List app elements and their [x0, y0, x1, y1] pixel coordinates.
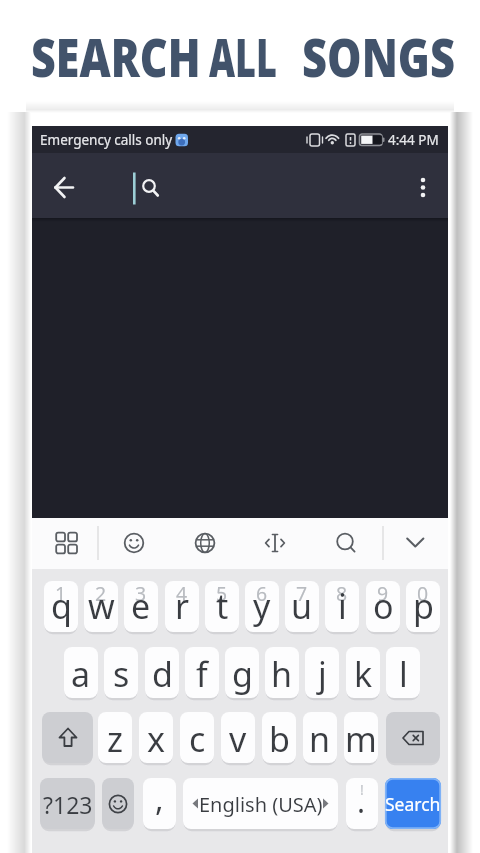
staticText: f	[196, 651, 208, 697]
button[interactable]	[102, 778, 134, 829]
staticText: 8	[336, 580, 348, 607]
button[interactable]	[183, 520, 228, 567]
button[interactable]: 0	[406, 581, 440, 632]
button[interactable]: 1	[44, 581, 78, 632]
button[interactable]	[386, 712, 440, 763]
button[interactable]: f	[185, 647, 219, 698]
staticText: 5	[216, 580, 228, 607]
staticText: Search	[385, 792, 441, 816]
staticText: 4	[176, 580, 188, 607]
button[interactable]: n	[303, 712, 337, 763]
button[interactable]	[393, 520, 438, 567]
staticText: Emergency calls only	[40, 131, 173, 149]
staticText: n	[309, 716, 331, 762]
staticText: w	[88, 583, 115, 629]
staticText: 9	[377, 580, 389, 607]
staticText: 7	[296, 580, 308, 607]
button[interactable]	[253, 520, 298, 567]
button[interactable]: 8	[325, 581, 359, 632]
button[interactable]	[44, 520, 89, 567]
staticText: SONGS	[302, 21, 456, 93]
staticText: 3	[135, 580, 147, 607]
button[interactable]: Search	[385, 778, 441, 829]
button[interactable]: 3	[124, 581, 158, 632]
button[interactable]: s	[104, 647, 138, 698]
staticText: 2	[95, 580, 107, 607]
staticText: 0	[417, 580, 429, 607]
staticText: o	[373, 583, 394, 629]
staticText: v	[229, 716, 247, 762]
button[interactable]: x	[139, 712, 173, 763]
button[interactable]: English (USA)	[183, 778, 338, 829]
button[interactable]: m	[344, 712, 378, 763]
staticText: g	[232, 651, 253, 697]
staticText: 1	[55, 580, 67, 607]
staticText: q	[51, 583, 72, 629]
staticText: k	[354, 651, 373, 697]
staticText: c	[189, 716, 206, 762]
button[interactable]: l	[386, 647, 420, 698]
button[interactable]: 9	[366, 581, 400, 632]
button[interactable]	[40, 163, 86, 209]
button[interactable]: j	[305, 647, 339, 698]
button[interactable]	[323, 520, 368, 567]
staticText: t	[216, 583, 229, 629]
button[interactable]: z	[98, 712, 132, 763]
button[interactable]	[122, 163, 392, 209]
button[interactable]: !	[346, 778, 378, 829]
staticText: z	[107, 716, 123, 762]
button[interactable]: k	[346, 647, 380, 698]
staticText: ALL	[209, 21, 277, 93]
button[interactable]: a	[64, 647, 98, 698]
staticText: s	[113, 651, 130, 697]
staticText: u	[291, 583, 313, 629]
staticText: e	[131, 583, 151, 629]
button[interactable]: b	[262, 712, 296, 763]
button[interactable]: v	[221, 712, 255, 763]
staticText: m	[345, 716, 377, 762]
staticText: !	[360, 780, 364, 799]
staticText: English (USA)	[199, 791, 323, 818]
button[interactable]	[112, 520, 157, 567]
button[interactable]: 7	[285, 581, 319, 632]
staticText: i	[338, 583, 347, 629]
staticText: a	[71, 651, 91, 697]
button[interactable]: d	[145, 647, 179, 698]
staticText: 4:44 PM	[388, 131, 439, 149]
button[interactable]: h	[265, 647, 299, 698]
button[interactable]: 5	[205, 581, 239, 632]
staticText: p	[413, 583, 434, 629]
staticText: h	[271, 651, 293, 697]
button[interactable]: ?123	[40, 778, 95, 829]
button[interactable]	[42, 712, 93, 763]
staticText: 6	[256, 580, 268, 607]
button[interactable]: 4	[165, 581, 199, 632]
staticText: SEARCH	[31, 21, 201, 93]
staticText: j	[318, 651, 327, 697]
staticText: b	[269, 716, 290, 762]
button[interactable]: 6	[245, 581, 279, 632]
staticText: ,	[155, 777, 164, 821]
staticText: .	[357, 781, 366, 822]
staticText: ?123	[43, 789, 93, 820]
staticText: x	[147, 716, 165, 762]
button[interactable]: g	[225, 647, 259, 698]
button[interactable]: 2	[84, 581, 118, 632]
staticText: r	[175, 583, 190, 629]
button[interactable]: c	[180, 712, 214, 763]
staticText: l	[399, 651, 408, 697]
staticText: d	[152, 651, 173, 697]
button[interactable]	[400, 163, 446, 209]
staticText: y	[253, 583, 271, 629]
button[interactable]: ,	[143, 778, 176, 829]
